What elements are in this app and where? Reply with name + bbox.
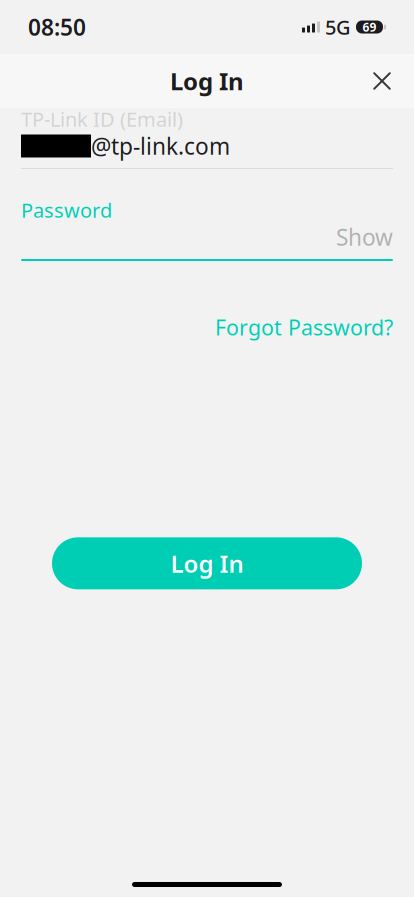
button[interactable]: Forgot Password? — [203, 307, 393, 347]
staticText: Log In — [170, 65, 244, 97]
staticText: @tp-link.com — [91, 131, 230, 161]
staticText: Password — [21, 197, 112, 223]
button[interactable]: Close — [360, 59, 404, 103]
staticText: TP-Link ID (Email) — [21, 106, 183, 132]
button[interactable]: Log In — [52, 537, 362, 589]
staticText: Forgot Password? — [215, 313, 393, 341]
staticText: 5G — [325, 14, 351, 40]
staticText: Log In — [170, 547, 243, 579]
staticText: Show — [336, 222, 393, 252]
staticText: 08:50 — [28, 12, 86, 42]
button[interactable]: Show — [324, 218, 393, 256]
staticText: 69 — [362, 19, 376, 35]
